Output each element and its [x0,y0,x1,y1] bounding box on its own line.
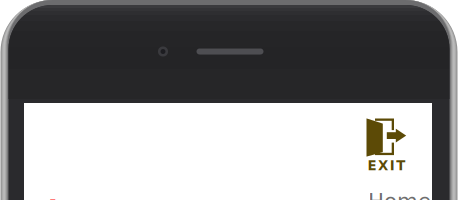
staticText: Home [368,189,431,200]
staticText: ホーム [35,187,139,200]
button[interactable]: Exit [366,118,410,170]
staticText: EXIT [367,158,405,173]
